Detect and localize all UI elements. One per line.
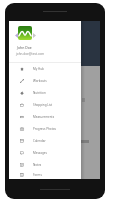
button[interactable]: Shopping List — [9, 99, 81, 111]
staticText: Shopping List — [33, 103, 53, 107]
staticText: Calendar — [33, 139, 46, 143]
staticText: Messages — [33, 151, 47, 155]
staticText: My Hub — [33, 67, 44, 71]
button[interactable]: Notes — [9, 159, 81, 171]
staticText: Measurements — [33, 115, 55, 119]
button[interactable]: Forms — [9, 171, 81, 179]
button[interactable]: My Hub — [9, 63, 81, 75]
button[interactable]: Workouts — [9, 75, 81, 87]
staticText: john.doe@test.com — [16, 52, 45, 56]
other: Next — [33, 33, 36, 38]
other: Previous — [15, 33, 18, 38]
staticText: Workouts — [33, 79, 47, 83]
button[interactable]: Progress Photos — [9, 123, 81, 135]
button[interactable]: Nutrition — [9, 87, 81, 99]
staticText: John Doe — [17, 45, 32, 50]
staticText: Progress Photos — [33, 127, 56, 131]
button[interactable]: Measurements — [9, 111, 81, 123]
staticText: Forms — [33, 173, 42, 177]
staticText: Notes — [33, 163, 42, 167]
staticText: Nutrition — [33, 91, 46, 95]
button[interactable]: Calendar — [9, 135, 81, 147]
button[interactable]: Messages — [9, 147, 81, 159]
